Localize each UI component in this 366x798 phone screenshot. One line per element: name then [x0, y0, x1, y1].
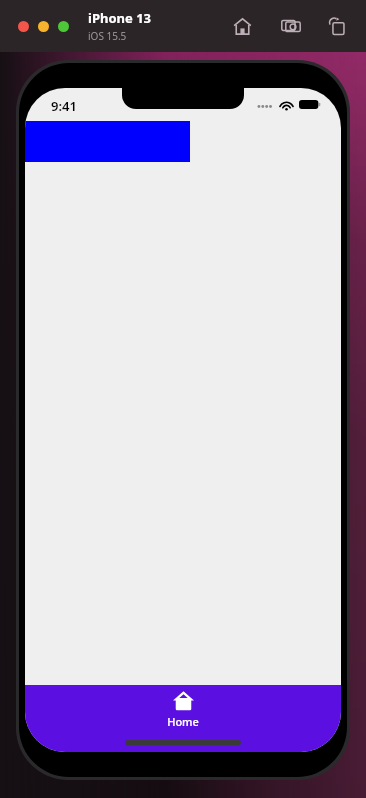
button[interactable]	[18, 21, 29, 32]
button[interactable]: Screenshot	[275, 10, 307, 42]
button[interactable]: Home	[135, 690, 231, 729]
staticText: Home	[167, 714, 199, 729]
button[interactable]: Home	[226, 10, 258, 42]
button[interactable]	[38, 21, 49, 32]
staticText: iOS 15.5	[88, 29, 127, 43]
button[interactable]: Rotate	[321, 10, 353, 42]
button[interactable]	[58, 21, 69, 32]
staticText: 9:41	[51, 97, 77, 115]
staticText: iPhone 13	[88, 9, 151, 27]
